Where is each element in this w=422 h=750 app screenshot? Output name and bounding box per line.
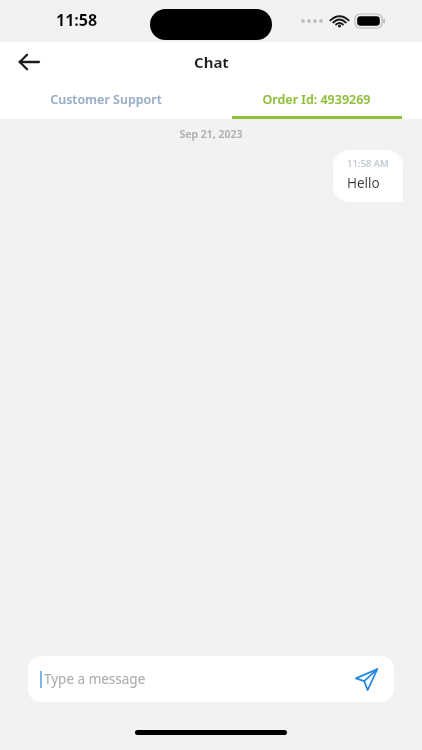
staticText: Type a message	[44, 670, 146, 688]
button[interactable]: Back	[8, 42, 50, 82]
staticText: Chat	[194, 52, 229, 72]
staticText: Order Id: 4939269	[262, 91, 371, 108]
button[interactable]: 11:58 AM	[333, 150, 403, 202]
button[interactable]: Send	[348, 661, 384, 697]
button[interactable]: Type a message	[28, 656, 394, 702]
staticText: 11:58	[56, 9, 98, 31]
staticText: 11:58 AM	[347, 157, 389, 170]
staticText: Hello	[347, 174, 380, 192]
button[interactable]: Customer Support	[0, 82, 211, 116]
button[interactable]: Order Id: 4939269	[211, 82, 422, 116]
staticText: Customer Support	[50, 91, 162, 108]
staticText: Sep 21, 2023	[0, 127, 422, 141]
